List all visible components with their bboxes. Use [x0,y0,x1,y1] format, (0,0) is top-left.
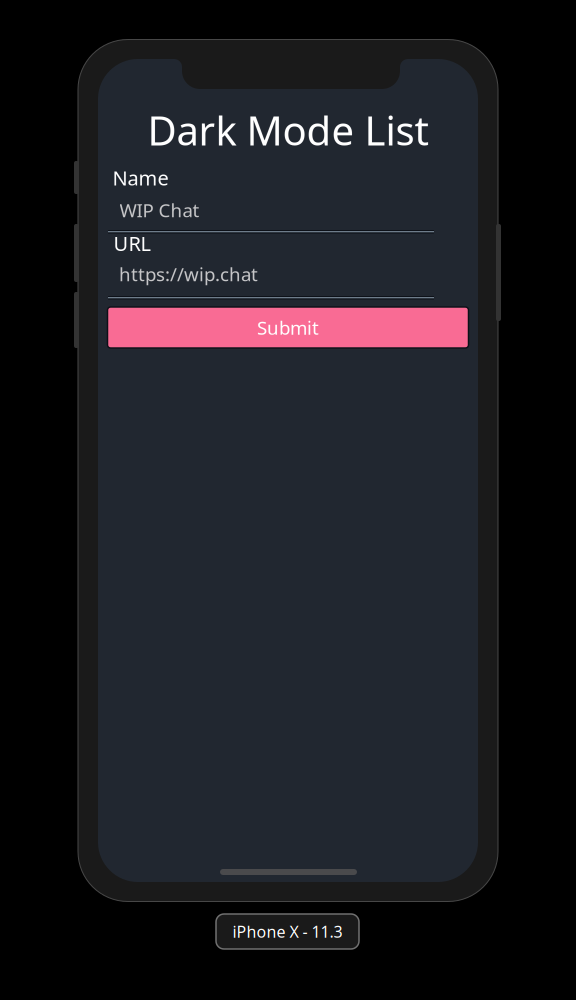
button[interactable]: Submit [107,307,468,348]
button[interactable]: iPhone X - 11.3 [216,914,359,949]
staticText: Name [112,164,168,191]
staticText: WIP Chat [119,197,199,222]
staticText: Submit [257,315,319,340]
staticText: URL [113,230,150,257]
staticText: iPhone X - 11.3 [232,921,342,942]
staticText: https://wip.chat [119,261,258,286]
staticText: Dark Mode List [147,103,428,156]
